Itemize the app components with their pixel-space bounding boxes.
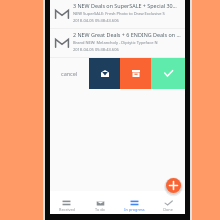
- button[interactable]: Done: [151, 191, 185, 214]
- staticText: To do: [95, 207, 105, 212]
- button[interactable]: cancel: [50, 58, 89, 89]
- staticText: Brand NEW: Melancholy - Diptytic Typefac…: [73, 40, 158, 45]
- staticText: Received: [59, 207, 75, 212]
- button[interactable]: Received: [50, 191, 83, 214]
- staticText: 2018-04-05 05:38:43.606: [73, 18, 119, 23]
- staticText: cancel: [61, 70, 78, 77]
- staticText: NEW SuperSALE: Fresh Photo to Draw Exclu…: [73, 11, 165, 16]
- staticText: In progress: [124, 207, 145, 212]
- button[interactable]: Mark as read: [89, 58, 120, 89]
- button[interactable]: Done: [151, 58, 185, 89]
- staticText: 2018-04-05 05:38:43.606: [73, 47, 119, 52]
- button[interactable]: Compose new message: [163, 175, 184, 196]
- button[interactable]: Delete: [120, 58, 151, 89]
- staticText: 2 NEW Great Deals + 6 ENDING Deals on ..…: [73, 31, 181, 38]
- button[interactable]: To do: [83, 191, 117, 214]
- button[interactable]: In progress: [117, 191, 151, 214]
- staticText: Done: [163, 207, 173, 212]
- button[interactable]: 3 NEW Deals on SuperSALE + Special 30% .…: [50, 0, 185, 28]
- button[interactable]: 2 NEW Great Deals + 6 ENDING Deals on ..…: [50, 29, 185, 57]
- staticText: 3 NEW Deals on SuperSALE + Special 30% .…: [73, 2, 181, 9]
